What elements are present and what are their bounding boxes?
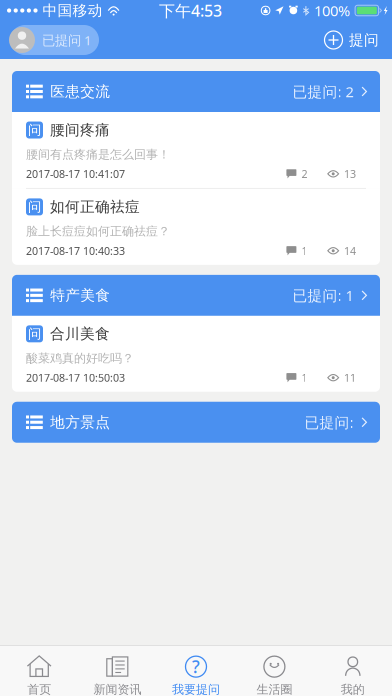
staticText: 已提问: 1	[292, 286, 353, 305]
staticText: 我的	[341, 682, 365, 696]
button[interactable]: 问	[12, 112, 380, 189]
button[interactable]: 问	[12, 189, 380, 265]
staticText: 医患交流	[50, 82, 110, 100]
staticText: 已提问: 2	[292, 82, 353, 101]
button[interactable]: 我的	[314, 646, 392, 696]
button[interactable]: 特产美食	[12, 275, 380, 316]
staticText: 下午4:53	[159, 0, 222, 21]
staticText: 新闻资讯	[94, 682, 142, 696]
button[interactable]: 已提问 1	[10, 25, 99, 55]
button[interactable]: 首页	[0, 646, 78, 696]
staticText: 14	[344, 244, 356, 258]
staticText: 100%	[314, 1, 350, 20]
staticText: 13	[344, 167, 356, 181]
staticText: 合川美食	[50, 325, 110, 343]
button[interactable]: 提问	[324, 25, 379, 54]
staticText: 酸菜鸡真的好吃吗？	[26, 351, 134, 366]
button[interactable]: 医患交流	[12, 71, 380, 112]
staticText: 腰间疼痛	[50, 121, 110, 139]
staticText: 我要提问	[172, 682, 220, 696]
staticText: 如何正确祛痘	[50, 198, 140, 216]
staticText: 问	[28, 199, 41, 215]
button[interactable]: 问	[12, 316, 380, 392]
staticText: 2017-08-17 10:41:07	[26, 167, 125, 181]
staticText: 中国移动	[43, 1, 103, 19]
staticText: 脸上长痘痘如何正确祛痘？	[26, 224, 170, 239]
staticText: 腰间有点疼痛是怎么回事！	[26, 147, 170, 162]
staticText: 已提问:	[304, 412, 353, 432]
staticText: 生活圈	[256, 682, 292, 696]
staticText: 2017-08-17 10:40:33	[26, 244, 125, 258]
staticText: 1	[301, 244, 307, 258]
staticText: 问	[28, 326, 41, 342]
staticText: ?	[192, 655, 200, 678]
staticText: 1	[301, 371, 307, 385]
staticText: 地方景点	[50, 413, 110, 431]
staticText: 问	[28, 122, 41, 138]
button[interactable]: ?	[157, 646, 235, 696]
staticText: 已提问 1	[42, 31, 92, 49]
button[interactable]: 新闻资讯	[78, 646, 157, 696]
staticText: 首页	[27, 682, 51, 696]
button[interactable]: 地方景点	[12, 402, 380, 443]
staticText: 提问	[349, 31, 379, 49]
staticText: 11	[344, 371, 356, 385]
staticText: 2	[301, 167, 307, 181]
button[interactable]: 生活圈	[235, 646, 314, 696]
staticText: 2017-08-17 10:50:03	[26, 371, 125, 385]
staticText: 特产美食	[50, 286, 110, 304]
